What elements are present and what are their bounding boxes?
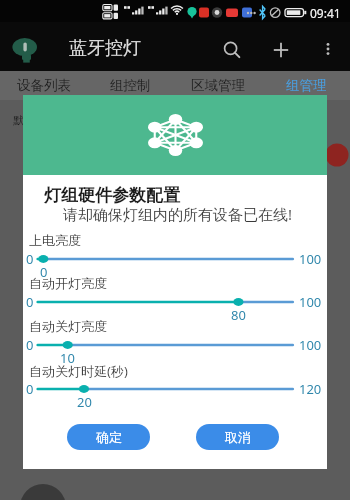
staticText: 100 <box>299 336 322 354</box>
button[interactable]: 自动关灯时延(秒) <box>23 362 327 404</box>
staticText: 取消 <box>225 429 251 445</box>
staticText: 0 <box>26 336 34 354</box>
staticText: 蓝牙控灯 <box>69 37 141 60</box>
staticText: 灯组硬件参数配置 <box>44 185 180 206</box>
staticText: 0 <box>40 263 48 281</box>
staticText: 09:41 <box>310 5 341 21</box>
button[interactable]: 组控制 <box>87 71 174 100</box>
button[interactable]: Search <box>209 27 254 72</box>
button[interactable]: Add <box>258 27 303 72</box>
button[interactable]: 自动开灯亮度 <box>23 275 327 317</box>
staticText: 80 <box>231 306 246 324</box>
staticText: 自动关灯亮度 <box>29 318 107 334</box>
button[interactable]: 组管理 <box>262 71 350 100</box>
staticText: 默认分组 <box>13 113 57 127</box>
staticText: 0 <box>26 380 34 398</box>
button[interactable]: 确定 <box>67 424 150 450</box>
button[interactable]: 区域管理 <box>174 71 262 100</box>
staticText: 0 <box>26 250 34 268</box>
button[interactable]: 设备列表 <box>0 71 87 100</box>
staticText: 组管理 <box>286 77 327 94</box>
staticText: 请却确保灯组内的所有设备已在线! <box>63 204 293 224</box>
staticText: 上电亮度 <box>29 232 81 248</box>
staticText: 120 <box>299 380 322 398</box>
staticText: 组控制 <box>110 77 151 94</box>
staticText: 10 <box>60 349 75 367</box>
staticText: 确定 <box>96 429 122 445</box>
staticText: 100 <box>299 250 322 268</box>
button[interactable]: 上电亮度 <box>23 232 327 274</box>
staticText: 20 <box>77 393 92 411</box>
button[interactable]: 取消 <box>196 424 279 450</box>
staticText: 设备列表 <box>17 77 71 94</box>
button[interactable]: More options <box>306 27 350 71</box>
staticText: 0 <box>26 293 34 311</box>
button[interactable]: 自动关灯亮度 <box>23 318 327 360</box>
staticText: 100 <box>299 293 322 311</box>
staticText: 自动开灯亮度 <box>29 275 107 291</box>
staticText: 区域管理 <box>191 77 245 94</box>
staticText: 自动关灯时延(秒) <box>29 362 128 380</box>
